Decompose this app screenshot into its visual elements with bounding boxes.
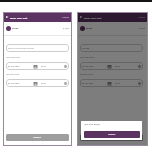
button[interactable]: 22:42 bbox=[113, 62, 143, 70]
staticText: € 0,00 bbox=[63, 27, 69, 30]
other: Pick time bbox=[138, 65, 141, 68]
staticText: Continue bbox=[33, 136, 42, 139]
staticText: 02 Nov 2020 bbox=[82, 65, 94, 68]
button[interactable]: 02 Nov 2020 bbox=[80, 79, 113, 87]
other: Pick date bbox=[34, 65, 37, 68]
other: Pick date bbox=[34, 82, 37, 85]
staticText: Total Price bbox=[84, 123, 94, 126]
other: Pick time bbox=[64, 65, 67, 68]
button[interactable]: Enter License Plate Number bbox=[6, 44, 69, 52]
button[interactable]: 23:42 bbox=[113, 79, 143, 87]
staticText: 1:08:30 bbox=[62, 16, 69, 19]
other: Pick date bbox=[108, 65, 111, 68]
button[interactable]: KSH768 bbox=[80, 44, 143, 52]
staticText: 23:42 bbox=[115, 82, 120, 85]
staticText: 02 Nov 2020 bbox=[8, 82, 20, 85]
button[interactable]: Continue bbox=[6, 134, 69, 141]
button[interactable]: Back bbox=[79, 15, 83, 19]
button[interactable]: 23:42 bbox=[39, 79, 69, 87]
staticText: 02 Nov 2020 bbox=[82, 82, 94, 85]
staticText: € 6,40 bbox=[94, 123, 100, 126]
other: Pick time bbox=[64, 82, 67, 85]
button[interactable]: 02 Nov 2020 bbox=[6, 62, 39, 70]
staticText: End Date & Time bbox=[80, 73, 94, 75]
button[interactable]: 02 Nov 2020 bbox=[6, 79, 39, 87]
other: Pick time bbox=[138, 82, 141, 85]
staticText: € 0,00 bbox=[139, 27, 145, 30]
staticText: 22:42 bbox=[115, 65, 120, 68]
staticText: Continue bbox=[107, 136, 116, 139]
staticText: Start Date & Time bbox=[6, 56, 20, 58]
staticText: 25452 bbox=[12, 27, 19, 30]
button[interactable]: 22:42 bbox=[39, 62, 69, 70]
staticText: 25452 bbox=[86, 27, 93, 30]
staticText: 23:42 bbox=[41, 82, 46, 85]
staticText: Book Your Slot bbox=[84, 16, 102, 19]
other: Pick date bbox=[108, 82, 111, 85]
button[interactable]: 02 Nov 2020 bbox=[80, 62, 113, 70]
button[interactable]: Confirm bbox=[84, 131, 140, 138]
staticText: 1:08:30 bbox=[138, 16, 145, 19]
staticText: Confirm bbox=[108, 133, 116, 136]
staticText: 02 Nov 2020 bbox=[8, 65, 20, 68]
staticText: Enter License Plate Number bbox=[8, 47, 35, 50]
staticText: Book Your Slot bbox=[10, 16, 28, 19]
staticText: 22:42 bbox=[41, 65, 46, 68]
staticText: Start Date & Time bbox=[80, 56, 94, 58]
button[interactable]: Back bbox=[5, 15, 9, 19]
staticText: KSH768 bbox=[82, 47, 90, 50]
staticText: End Date & Time bbox=[6, 73, 20, 75]
button[interactable]: Continue bbox=[80, 134, 143, 141]
